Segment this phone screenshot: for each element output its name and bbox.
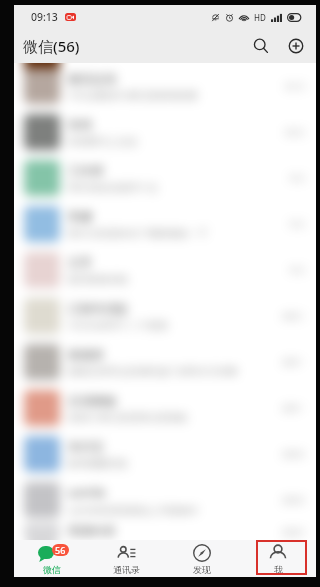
button[interactable]: 订阅号消息 [14, 293, 316, 339]
staticText: 王芳 [68, 255, 92, 270]
button[interactable]: 支付宝 [14, 431, 316, 477]
staticText: 工作群 [68, 163, 104, 178]
staticText: 好的我马上过去 [68, 135, 138, 148]
staticText: 56 [55, 544, 66, 556]
button[interactable]: 发现 [164, 540, 240, 577]
staticText: 微信运动 [68, 71, 116, 86]
staticText: 星期一 [282, 357, 306, 367]
staticText: 您的订单已发货请注意查收 [68, 411, 188, 424]
button[interactable]: 通讯录 [89, 540, 164, 577]
button[interactable]: usmile [14, 477, 316, 523]
staticText: 美团外卖 [68, 523, 116, 538]
staticText: 家庭群 [68, 347, 104, 362]
staticText: 订阅号消息 [68, 301, 128, 316]
staticText: 微信 [43, 564, 61, 575]
button[interactable]: Search [249, 34, 273, 58]
staticText: 账单提醒消息 [68, 457, 128, 470]
staticText: 微信(56) [23, 36, 80, 56]
button[interactable]: Add [284, 34, 308, 58]
button[interactable]: 王芳 [14, 247, 316, 293]
button[interactable]: 美团外卖 [14, 523, 316, 540]
staticText: usmile笑容加新品上市抢购中 [68, 503, 200, 517]
staticText: 我 [274, 564, 283, 575]
staticText: 李娜 [68, 209, 92, 224]
button[interactable]: 张伟 [14, 109, 316, 155]
button[interactable]: 微信运动 [14, 63, 316, 109]
button[interactable]: 工作群 [14, 155, 316, 201]
staticText: 收到谢谢你啦 [68, 273, 128, 286]
staticText: 09:13 [31, 10, 58, 24]
staticText: usmile [68, 484, 106, 500]
staticText: 通讯录 [113, 564, 140, 575]
button[interactable]: 56 [14, 540, 89, 577]
staticText: 明天的会议改到十点 [68, 181, 158, 194]
staticText: 今日头条等十二个更新 [68, 319, 168, 332]
button[interactable]: 我 [240, 540, 316, 577]
staticText: HD [254, 12, 266, 23]
staticText: 妈妈记得早点回来吃饭了好吗今天有事 [68, 365, 238, 378]
staticText: 张伟 [68, 117, 92, 132]
staticText: 发现 [193, 564, 211, 575]
staticText: 京东购物 [68, 393, 116, 408]
staticText: 今日步数排行榜已更新请查看 [68, 89, 198, 102]
staticText: 星期一 [282, 403, 306, 413]
button[interactable]: 京东购物 [14, 385, 316, 431]
staticText: 支付宝 [68, 439, 104, 454]
staticText: 照片已经发给你了哦请查收一下 [68, 227, 208, 240]
button[interactable]: 李娜 [14, 201, 316, 247]
button[interactable]: 家庭群 [14, 339, 316, 385]
